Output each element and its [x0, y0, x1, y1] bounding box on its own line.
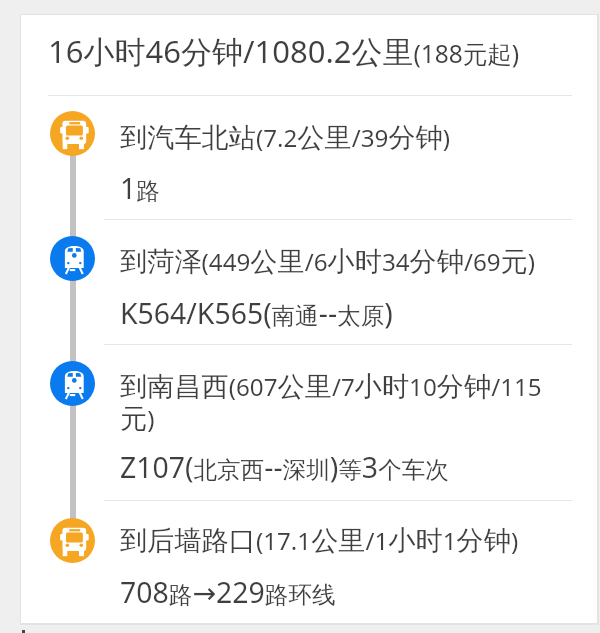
staticText: 1路 [120, 169, 160, 208]
staticText: 16小时46分钟/1080.2公里(188元起) [48, 30, 520, 72]
staticText: 708路→229路环线 [120, 573, 336, 612]
button[interactable]: Train station [50, 236, 95, 281]
button[interactable]: Train station [50, 361, 95, 406]
staticText: K564/K565(南通--太原) [120, 294, 393, 333]
staticText: Z107(北京西--深圳)等3个车次 [120, 448, 449, 487]
button[interactable]: Bus stop [50, 518, 95, 563]
staticText: 到菏泽(449公里/6小时34分钟/69元) [120, 245, 536, 279]
staticText: 到后墙路口(17.1公里/1小时1分钟) [120, 524, 519, 558]
staticText: 到汽车北站(7.2公里/39分钟) [120, 121, 451, 155]
button[interactable]: Bus stop [50, 111, 95, 156]
staticText: 到南昌西(607公里/7小时10分钟/115 [120, 370, 542, 404]
staticText: 元) [120, 402, 155, 436]
